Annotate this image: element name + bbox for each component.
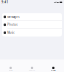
button[interactable]: Profile [43,58,64,72]
button[interactable]: Photos [2,21,62,29]
staticText: 9:41 [2,0,9,4]
button[interactable]: Music [2,29,62,36]
staticText: Home [9,69,13,71]
button[interactable]: Home [0,58,21,72]
staticText: Profile [51,69,56,71]
staticText: Photos [7,23,17,26]
staticText: Music [7,31,14,34]
button[interactable]: Search [21,58,43,72]
button[interactable]: Messages [2,13,62,21]
staticText: Messages [7,15,19,19]
